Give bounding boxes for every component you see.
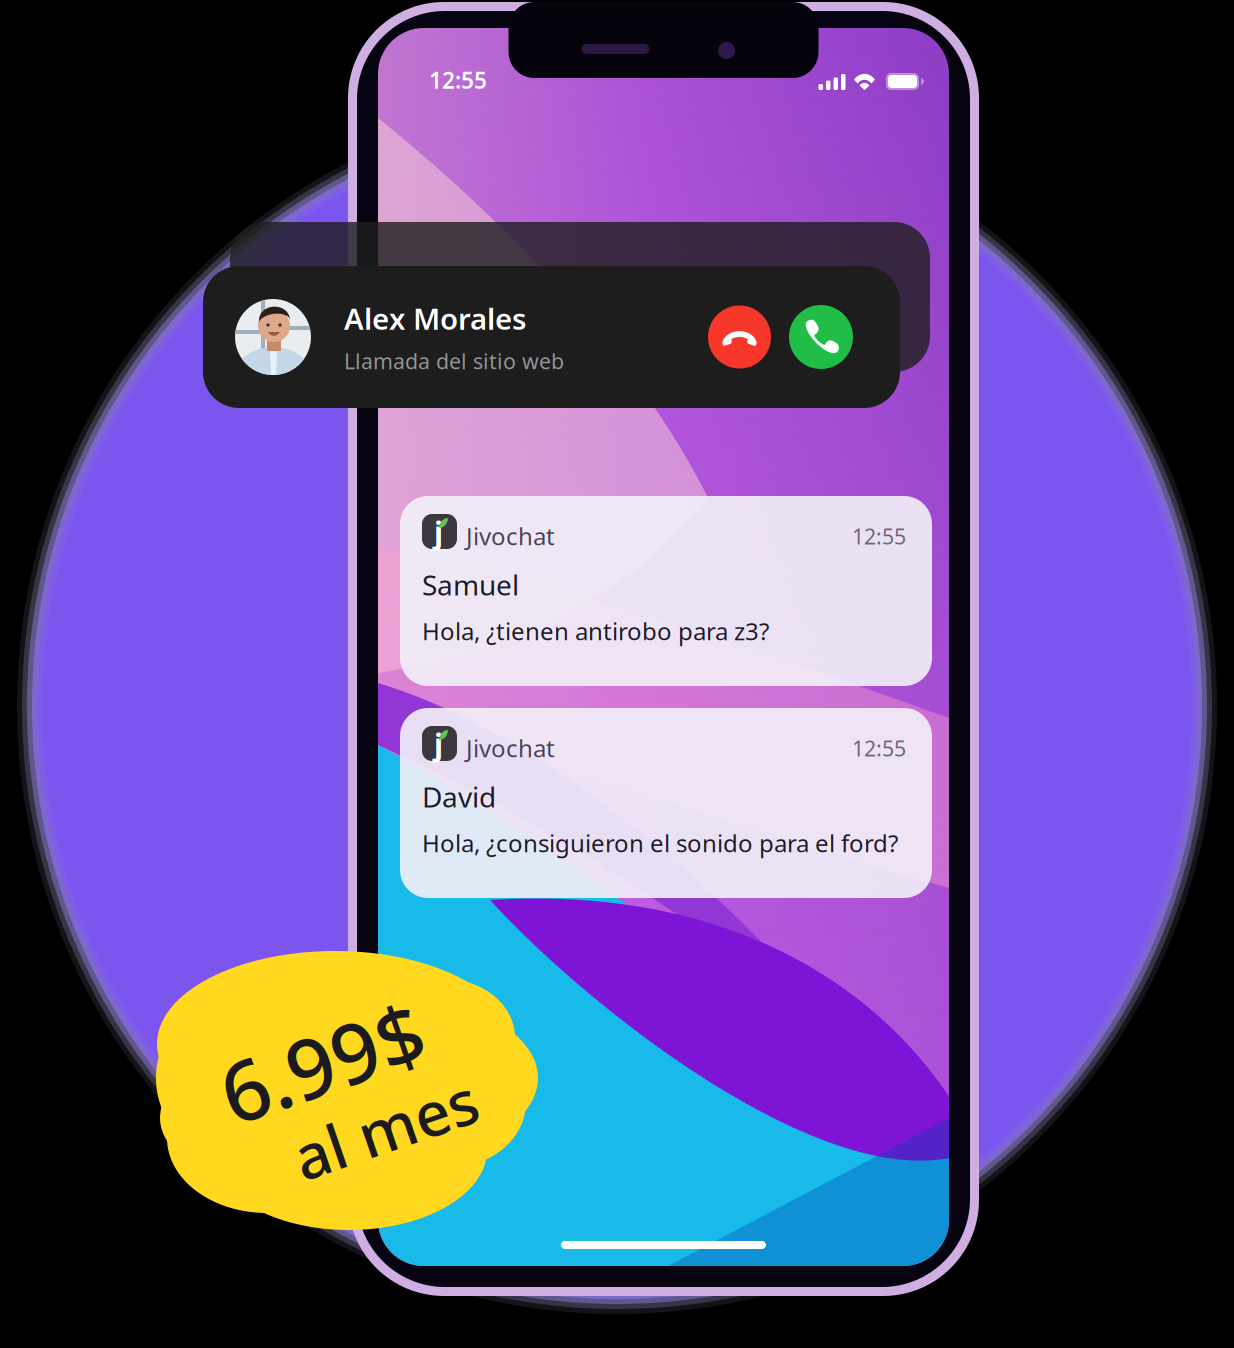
button[interactable]: j xyxy=(400,496,932,686)
staticText: Jivochat xyxy=(466,732,555,764)
staticText: 6.99$ xyxy=(227,1000,437,1110)
staticText: j xyxy=(434,511,443,552)
button[interactable]: j xyxy=(400,708,932,898)
staticText: 12:55 xyxy=(429,65,487,95)
staticText: Hola, ¿consiguieron el sonido para el fo… xyxy=(422,827,898,859)
staticText: Jivochat xyxy=(466,520,555,552)
staticText: Llamada del sitio web xyxy=(344,347,564,375)
staticText: Samuel xyxy=(422,566,519,603)
staticText: 12:55 xyxy=(852,522,906,550)
staticText: 12:55 xyxy=(852,734,906,762)
staticText: David xyxy=(422,778,496,815)
staticText: j xyxy=(434,723,443,764)
button[interactable]: Alex Morales xyxy=(203,266,900,408)
staticText: Hola, ¿tienen antirobo para z3? xyxy=(422,615,769,647)
staticText: al mes xyxy=(275,1098,466,1180)
staticText: Alex Morales xyxy=(344,299,526,338)
